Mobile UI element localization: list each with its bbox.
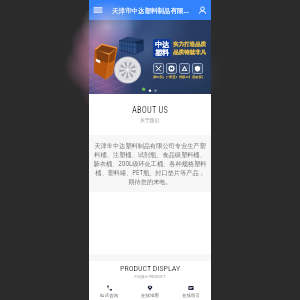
button[interactable]: Menu <box>89 0 107 20</box>
staticText: PRODUCT DISPLAY <box>120 264 181 273</box>
staticText: 施工实力 <box>153 75 164 79</box>
button[interactable]: 厂家直销 <box>166 63 177 74</box>
button[interactable]: 施工实力 <box>153 63 164 74</box>
staticText: 中达 塑料 <box>155 40 169 57</box>
button[interactable]: 样板工程 <box>179 63 190 74</box>
staticText: 天津市中达塑料制品有限公司专业生产塑料桶、注塑桶、试剂瓶、食品级塑料桶、肠衣桶、… <box>93 142 207 185</box>
staticText: 在线留言 <box>182 293 200 299</box>
staticText: 样板工程 <box>179 75 190 79</box>
staticText: 电话咨询 <box>100 293 118 299</box>
button[interactable]: Account <box>193 0 211 20</box>
staticText: 关于我们 <box>140 117 160 123</box>
staticText: 质量保证 <box>192 75 203 79</box>
staticText: 实力打造品质 品质铸就非凡 <box>173 41 206 56</box>
button[interactable]: 在线地图 <box>129 283 170 300</box>
staticText: 天津市中达塑料制品有限... <box>112 6 189 15</box>
staticText: ABOUT US <box>132 105 168 115</box>
staticText: 产品展示 PRODUCT <box>134 274 166 279</box>
button[interactable]: 电话咨询 <box>89 283 129 300</box>
staticText: 厂家直销 <box>166 75 177 79</box>
button[interactable]: 在线留言 <box>170 283 211 300</box>
button[interactable]: 质量保证 <box>192 63 203 74</box>
staticText: 在线地图 <box>141 293 159 299</box>
